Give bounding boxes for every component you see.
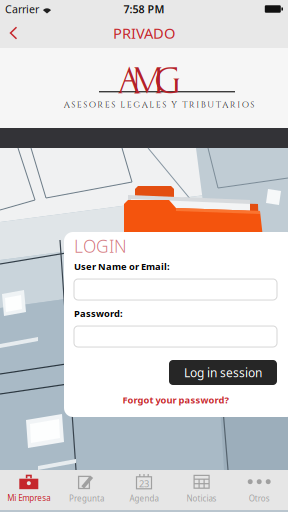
staticText: Log in session [184,364,262,380]
staticText: 7:58 PM [123,2,164,16]
staticText: Agenda [129,493,158,504]
staticText: Password: [74,307,123,320]
staticText: 23 [139,477,149,490]
button[interactable]: Back [0,18,40,48]
button[interactable]: Pregunta [58,470,115,510]
staticText: LOGIN [74,234,127,257]
staticText: Mi Empresa [7,493,50,503]
staticText: Otros [249,493,270,504]
staticText: User Name or Email: [74,260,170,273]
staticText: ASESORES LEGALES Y TRIBUTARIOS [64,99,254,111]
button[interactable]: Log in session [169,360,277,385]
staticText: Pregunta [69,493,104,504]
button[interactable]: Noticias [173,470,230,510]
staticText: Carrier [5,2,39,16]
button[interactable]: Mi Empresa [0,470,58,510]
button[interactable]: Forgot your password? [122,394,228,406]
staticText: Noticias [187,493,217,504]
staticText: Forgot your password? [122,394,228,406]
button[interactable]: 23 [115,470,173,510]
staticText: AMG [117,59,180,103]
button[interactable]: Otros [230,470,288,510]
staticText: PRIVADO [113,23,175,43]
